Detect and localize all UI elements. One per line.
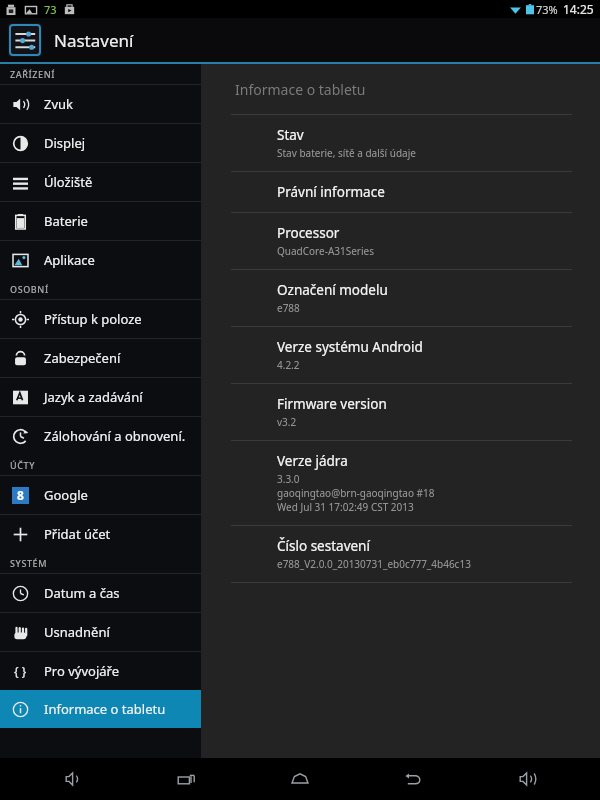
- button[interactable]: Verze systému Android: [201, 327, 600, 383]
- staticText: Baterie: [44, 212, 88, 230]
- button[interactable]: Označení modelu: [201, 270, 600, 326]
- button[interactable]: Baterie: [0, 202, 201, 240]
- staticText: Informace o tabletu: [235, 80, 366, 99]
- button[interactable]: Settings app icon: [8, 23, 42, 57]
- staticText: Stav: [277, 126, 304, 144]
- button[interactable]: Stav: [201, 115, 600, 171]
- staticText: Datum a čas: [44, 584, 120, 602]
- staticText: 8: [17, 487, 24, 503]
- button[interactable]: Aplikace: [0, 241, 201, 279]
- staticText: ZAŘÍZENÍ: [10, 68, 56, 80]
- staticText: Verze systému Android: [277, 338, 423, 356]
- button[interactable]: Přidat účet: [0, 515, 201, 553]
- staticText: v3.2: [277, 415, 297, 429]
- staticText: Aplikace: [44, 251, 95, 269]
- button[interactable]: Informace o tabletu: [0, 690, 201, 728]
- staticText: Pro vývojáře: [44, 662, 120, 680]
- staticText: Processor: [277, 224, 340, 242]
- staticText: Verze jádra: [277, 452, 348, 470]
- staticText: ÚČTY: [10, 459, 36, 471]
- staticText: 14:25: [563, 1, 594, 17]
- staticText: Displej: [44, 134, 86, 152]
- button[interactable]: Usnadnění: [0, 613, 201, 651]
- button[interactable]: Právní informace: [201, 172, 600, 212]
- button[interactable]: Processor: [201, 213, 600, 269]
- staticText: Přidat účet: [44, 525, 111, 543]
- button[interactable]: Zálohování a obnovení.: [0, 417, 201, 455]
- staticText: Stav baterie, sítě a další údaje: [277, 146, 416, 160]
- staticText: 73%: [536, 2, 558, 17]
- staticText: 4.2.2: [277, 358, 300, 372]
- button[interactable]: Zabezpečení: [0, 339, 201, 377]
- staticText: Usnadnění: [44, 623, 110, 641]
- staticText: OSOBNÍ: [10, 283, 49, 295]
- staticText: Právní informace: [277, 183, 385, 201]
- button[interactable]: Číslo sestavení: [201, 526, 600, 582]
- button[interactable]: Home: [260, 758, 340, 800]
- staticText: Jazyk a zadávání: [44, 388, 143, 406]
- button[interactable]: Jazyk a zadávání: [0, 378, 201, 416]
- button[interactable]: Displej: [0, 124, 201, 162]
- button[interactable]: Datum a čas: [0, 574, 201, 612]
- staticText: SYSTÉM: [10, 557, 48, 569]
- button[interactable]: Firmware version: [201, 384, 600, 440]
- staticText: 73: [44, 2, 57, 17]
- staticText: Zvuk: [44, 95, 74, 113]
- staticText: Wed Jul 31 17:02:49 CST 2013: [277, 500, 414, 514]
- staticText: Nastavení: [54, 29, 134, 52]
- button[interactable]: Volume down: [33, 758, 113, 800]
- staticText: { }: [14, 663, 27, 679]
- staticText: e788_V2.0.0_20130731_eb0c777_4b46c13: [277, 557, 471, 571]
- button[interactable]: Back: [373, 758, 453, 800]
- staticText: Úložiště: [44, 173, 93, 191]
- button[interactable]: 8: [0, 476, 201, 514]
- staticText: 3.3.0: [277, 472, 300, 486]
- staticText: Informace o tabletu: [44, 700, 166, 718]
- button[interactable]: Přístup k poloze: [0, 300, 201, 338]
- staticText: Přístup k poloze: [44, 310, 142, 328]
- staticText: gaoqingtao@brn-gaoqingtao #18: [277, 486, 435, 500]
- button[interactable]: Zvuk: [0, 85, 201, 123]
- staticText: Google: [44, 486, 88, 504]
- button[interactable]: Recent apps: [147, 758, 227, 800]
- button[interactable]: Verze jádra: [201, 441, 600, 525]
- staticText: QuadCore-A31Series: [277, 244, 375, 258]
- staticText: e788: [277, 301, 300, 315]
- staticText: Označení modelu: [277, 281, 388, 299]
- button[interactable]: Volume up: [487, 758, 567, 800]
- staticText: Firmware version: [277, 395, 387, 413]
- button[interactable]: { }: [0, 652, 201, 690]
- button[interactable]: Úložiště: [0, 163, 201, 201]
- staticText: Číslo sestavení: [277, 537, 370, 555]
- staticText: Zálohování a obnovení.: [44, 427, 186, 445]
- staticText: Zabezpečení: [44, 349, 121, 367]
